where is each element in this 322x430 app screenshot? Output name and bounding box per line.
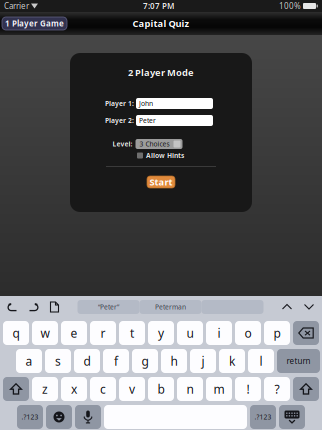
button[interactable]: i: [206, 321, 232, 345]
staticText: c: [100, 381, 106, 397]
staticText: u: [186, 325, 193, 341]
staticText: b: [157, 381, 164, 397]
button[interactable]: Paste: [44, 297, 65, 317]
button[interactable]: “Peter”: [77, 300, 139, 314]
staticText: q: [12, 325, 19, 341]
staticText: ?: [274, 381, 279, 397]
button[interactable]: Shift: [3, 377, 29, 401]
button[interactable]: b: [148, 377, 174, 401]
button[interactable]: n: [177, 377, 203, 401]
staticText: s: [55, 353, 61, 369]
button[interactable]: x: [61, 377, 87, 401]
staticText: return: [286, 356, 310, 366]
staticText: “Peter”: [98, 303, 119, 311]
button[interactable]: y: [148, 321, 174, 345]
staticText: 100%: [279, 1, 301, 11]
staticText: Player 1:: [105, 99, 134, 108]
button[interactable]: h: [161, 349, 187, 373]
button[interactable]: Shift: [293, 377, 319, 401]
staticText: a: [25, 353, 32, 369]
button[interactable]: s: [45, 349, 71, 373]
button[interactable]: u: [177, 321, 203, 345]
staticText: v: [129, 381, 135, 397]
button[interactable]: w: [32, 321, 58, 345]
staticText: f: [114, 353, 118, 369]
button[interactable]: .?123: [250, 405, 276, 429]
button[interactable]: Start: [147, 176, 175, 188]
button[interactable]: r: [90, 321, 116, 345]
button[interactable]: !: [235, 377, 261, 401]
button[interactable]: p: [264, 321, 290, 345]
staticText: h: [170, 353, 177, 369]
button[interactable]: Redo: [23, 297, 44, 317]
button[interactable]: 3 Choices: [135, 139, 182, 149]
button[interactable]: z: [32, 377, 58, 401]
staticText: n: [186, 381, 193, 397]
button[interactable]: g: [132, 349, 158, 373]
button[interactable]: Hide keyboard: [279, 405, 305, 429]
button[interactable]: l: [248, 349, 274, 373]
staticText: Level:: [112, 140, 132, 148]
button[interactable]: Previous field: [276, 297, 298, 317]
staticText: Peter: [139, 116, 156, 125]
button[interactable]: Next field: [298, 297, 320, 317]
staticText: j: [201, 353, 204, 369]
staticText: John: [139, 99, 153, 108]
staticText: 1 Player Game: [5, 18, 64, 29]
button[interactable]: f: [103, 349, 129, 373]
button[interactable]: j: [190, 349, 216, 373]
staticText: Peterman: [155, 303, 186, 311]
button[interactable]: t: [119, 321, 145, 345]
staticText: w: [40, 325, 49, 341]
staticText: Carrier: [4, 1, 29, 11]
staticText: g: [141, 353, 148, 369]
staticText: k: [229, 353, 235, 369]
staticText: z: [42, 381, 48, 397]
button[interactable]: [104, 405, 247, 429]
button[interactable]: .?123: [17, 405, 43, 429]
staticText: Player 2:: [105, 116, 134, 125]
button[interactable]: o: [235, 321, 261, 345]
button[interactable]: 1 Player Game: [2, 17, 67, 30]
staticText: m: [213, 381, 224, 397]
staticText: .?123: [21, 413, 38, 421]
button[interactable]: Delete: [293, 321, 319, 345]
staticText: e: [70, 325, 77, 341]
staticText: Allow Hints: [146, 151, 184, 160]
button[interactable]: Dictation: [75, 405, 101, 429]
staticText: 3 Choices: [139, 140, 169, 148]
button[interactable]: Peterman: [139, 300, 201, 314]
button[interactable]: v: [119, 377, 145, 401]
button[interactable]: Emoji: [46, 405, 72, 429]
staticText: !: [246, 381, 249, 397]
staticText: 2 Player Mode: [128, 66, 194, 79]
staticText: 7:07 PM: [143, 1, 174, 11]
staticText: .?123: [254, 413, 271, 421]
button[interactable]: d: [74, 349, 100, 373]
button[interactable]: Undo: [2, 297, 23, 317]
button[interactable]: return: [277, 349, 320, 373]
staticText: Start: [149, 176, 172, 188]
staticText: y: [158, 325, 164, 341]
staticText: i: [217, 325, 220, 341]
staticText: x: [71, 381, 77, 397]
button[interactable]: c: [90, 377, 116, 401]
button[interactable]: ?: [264, 377, 290, 401]
staticText: t: [130, 325, 134, 341]
staticText: l: [259, 353, 262, 369]
button[interactable]: e: [61, 321, 87, 345]
staticText: o: [244, 325, 251, 341]
button[interactable]: q: [3, 321, 29, 345]
staticText: Capital Quiz: [132, 17, 189, 30]
button[interactable]: k: [219, 349, 245, 373]
staticText: r: [100, 325, 105, 341]
button[interactable]: a: [16, 349, 42, 373]
staticText: d: [83, 353, 90, 369]
staticText: p: [273, 325, 280, 341]
button[interactable]: m: [206, 377, 232, 401]
